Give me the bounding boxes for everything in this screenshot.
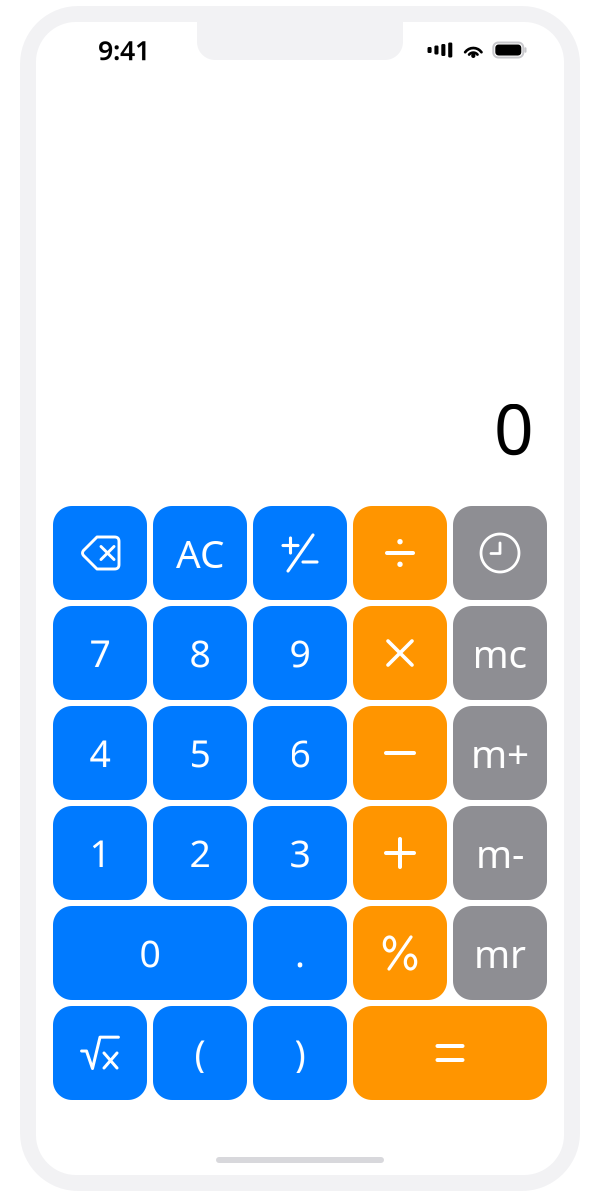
button[interactable]: Percent <box>353 906 447 1000</box>
button[interactable]: Multiply <box>353 606 447 700</box>
staticText: 3 <box>289 828 310 878</box>
button[interactable]: 7 <box>53 606 147 700</box>
staticText: AC <box>176 527 224 579</box>
button[interactable]: AC <box>153 506 247 600</box>
staticText: 2 <box>189 828 210 878</box>
button[interactable]: Divide <box>353 506 447 600</box>
button[interactable]: 1 <box>53 806 147 900</box>
button[interactable]: . <box>253 906 347 1000</box>
staticText: 9:41 <box>98 32 150 68</box>
button[interactable]: 9 <box>253 606 347 700</box>
button[interactable]: mr <box>453 906 547 1000</box>
staticText: mc <box>472 627 527 679</box>
button[interactable]: Plus Minus <box>253 506 347 600</box>
button[interactable]: ( <box>153 1006 247 1100</box>
staticText: 4 <box>89 728 110 778</box>
button[interactable]: 2 <box>153 806 247 900</box>
staticText: m- <box>476 827 524 879</box>
button[interactable]: 8 <box>153 606 247 700</box>
button[interactable]: 0 <box>53 906 247 1000</box>
button[interactable]: History <box>453 506 547 600</box>
button[interactable]: Square Root <box>53 1006 147 1100</box>
staticText: 1 <box>89 828 110 878</box>
button[interactable]: m- <box>453 806 547 900</box>
staticText: 0 <box>139 928 160 978</box>
staticText: 8 <box>189 628 210 678</box>
staticText: m+ <box>471 727 529 779</box>
staticText: 5 <box>189 728 210 778</box>
staticText: . <box>295 928 305 978</box>
staticText: ) <box>294 1028 305 1078</box>
button[interactable]: 5 <box>153 706 247 800</box>
button[interactable]: 6 <box>253 706 347 800</box>
staticText: 6 <box>289 728 310 778</box>
button[interactable]: ) <box>253 1006 347 1100</box>
button[interactable]: m+ <box>453 706 547 800</box>
staticText: 9 <box>289 628 310 678</box>
staticText: ( <box>194 1028 205 1078</box>
button[interactable]: Minus <box>353 706 447 800</box>
button[interactable]: Equals <box>353 1006 547 1100</box>
staticText: 7 <box>89 628 110 678</box>
button[interactable]: 4 <box>53 706 147 800</box>
staticText: mr <box>474 927 526 979</box>
button[interactable]: 3 <box>253 806 347 900</box>
button[interactable]: Plus <box>353 806 447 900</box>
button[interactable]: Delete <box>53 506 147 600</box>
button[interactable]: mc <box>453 606 547 700</box>
staticText: 0 <box>494 382 534 474</box>
